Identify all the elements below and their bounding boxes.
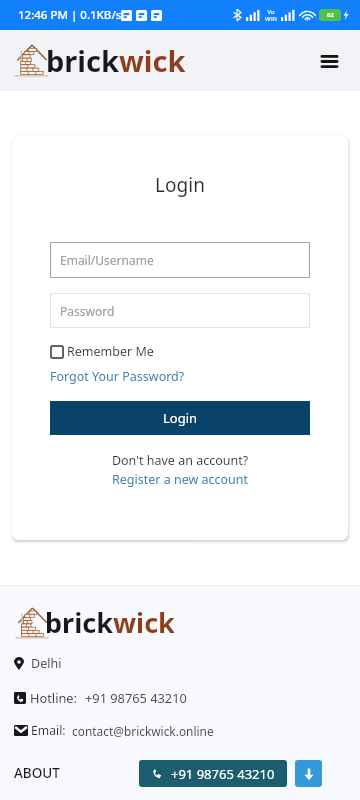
staticText: Vo WiFi xyxy=(265,8,277,22)
staticText: contact@brickwick.online xyxy=(72,723,214,739)
staticText: wick xyxy=(119,41,186,80)
button[interactable]: Login xyxy=(50,401,310,435)
staticText: Remember Me xyxy=(67,343,154,360)
button[interactable]: Download xyxy=(295,760,322,787)
staticText: Password xyxy=(60,303,115,319)
button[interactable]: Forgot Your Password? xyxy=(50,368,185,385)
staticText: Delhi xyxy=(31,655,62,672)
button[interactable]: Register a new account xyxy=(50,471,310,488)
button[interactable]: Password xyxy=(50,293,310,328)
staticText: 62 xyxy=(327,11,334,19)
button[interactable]: +91 98765 43210 xyxy=(139,760,287,787)
staticText: +91 98765 43210 xyxy=(85,689,187,706)
staticText: 12:46 PM | 0.1KB/s xyxy=(18,7,122,23)
button[interactable]: Remember Me xyxy=(50,343,154,360)
staticText: +91 98765 43210 xyxy=(171,765,275,783)
staticText: Email: xyxy=(31,722,66,739)
staticText: ABOUT xyxy=(14,764,60,782)
button[interactable]: Menu xyxy=(315,47,343,75)
staticText: Login xyxy=(50,172,310,198)
button[interactable]: Email/Username xyxy=(50,242,310,278)
staticText: brick xyxy=(45,604,113,641)
staticText: Don't have an account? xyxy=(50,452,310,469)
staticText: wick xyxy=(113,604,175,641)
staticText: Email/Username xyxy=(60,252,154,268)
staticText: Hotline: xyxy=(30,689,78,706)
staticText: Login xyxy=(163,409,198,427)
staticText: brick xyxy=(46,41,119,80)
